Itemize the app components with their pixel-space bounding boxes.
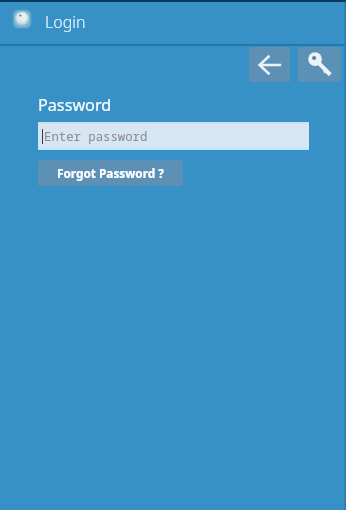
staticText: Password xyxy=(38,94,112,116)
button[interactable]: Navigate up xyxy=(12,9,32,29)
staticText: Login xyxy=(45,11,86,33)
staticText: Forgot Password ? xyxy=(57,165,164,181)
button[interactable]: Enter password xyxy=(38,122,309,150)
button[interactable]: Back xyxy=(249,47,290,82)
button[interactable]: Forgot Password ? xyxy=(38,160,183,186)
staticText: Enter password xyxy=(44,128,148,145)
button[interactable]: Show password xyxy=(298,47,341,82)
